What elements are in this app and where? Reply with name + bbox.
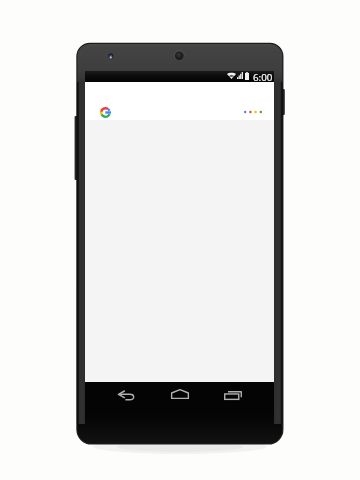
staticText: 6:00 <box>253 71 273 82</box>
button[interactable]: Back <box>111 384 141 408</box>
button[interactable]: Google <box>97 104 113 120</box>
button[interactable]: Home <box>165 382 195 406</box>
button[interactable]: Recent apps <box>218 383 248 407</box>
button[interactable]: Google Assistant <box>237 104 268 120</box>
